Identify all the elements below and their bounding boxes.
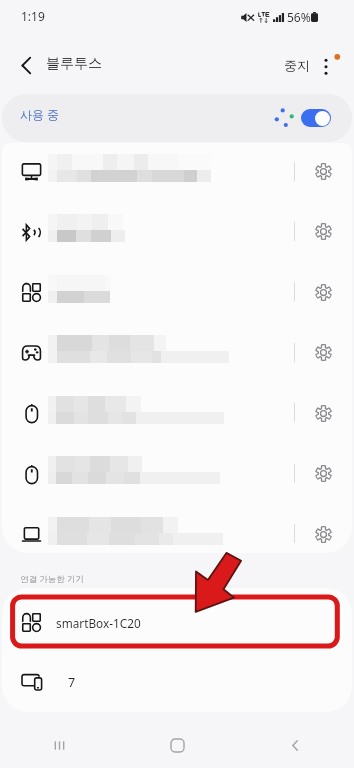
button[interactable]	[2, 143, 352, 201]
staticText: 중지	[284, 57, 310, 73]
staticText: 56%	[287, 9, 311, 25]
button[interactable]: smartBox-1C20	[2, 595, 352, 650]
button[interactable]: More options	[309, 48, 344, 83]
button[interactable]: Device settings	[305, 270, 341, 314]
staticText: smartBox-1C20	[56, 615, 141, 631]
button[interactable]: Back	[9, 48, 44, 83]
staticText: 사용 중	[20, 106, 60, 122]
button[interactable]	[2, 383, 352, 443]
button[interactable]: 중지	[277, 49, 317, 81]
button[interactable]: Device settings	[305, 512, 341, 553]
button[interactable]	[2, 322, 352, 382]
button[interactable]: Device settings	[305, 330, 341, 374]
button[interactable]	[2, 504, 352, 553]
button[interactable]: Back	[236, 722, 354, 768]
button[interactable]: Bluetooth on/off	[301, 109, 331, 127]
staticText: 1:19	[21, 8, 45, 24]
staticText: 블루투스	[46, 55, 102, 73]
button[interactable]: Device settings	[305, 149, 341, 193]
button[interactable]: Home	[118, 722, 236, 768]
button[interactable]: Device settings	[305, 391, 341, 435]
button[interactable]	[2, 201, 352, 261]
staticText: 연결 가능한 기기	[20, 573, 84, 585]
button[interactable]: Device settings	[305, 451, 341, 495]
button[interactable]: Recent apps	[0, 722, 118, 768]
button[interactable]: Device settings	[305, 209, 341, 253]
button[interactable]	[2, 262, 352, 322]
button[interactable]: 7	[2, 654, 352, 710]
staticText: 7	[68, 674, 76, 691]
button[interactable]	[2, 443, 352, 503]
